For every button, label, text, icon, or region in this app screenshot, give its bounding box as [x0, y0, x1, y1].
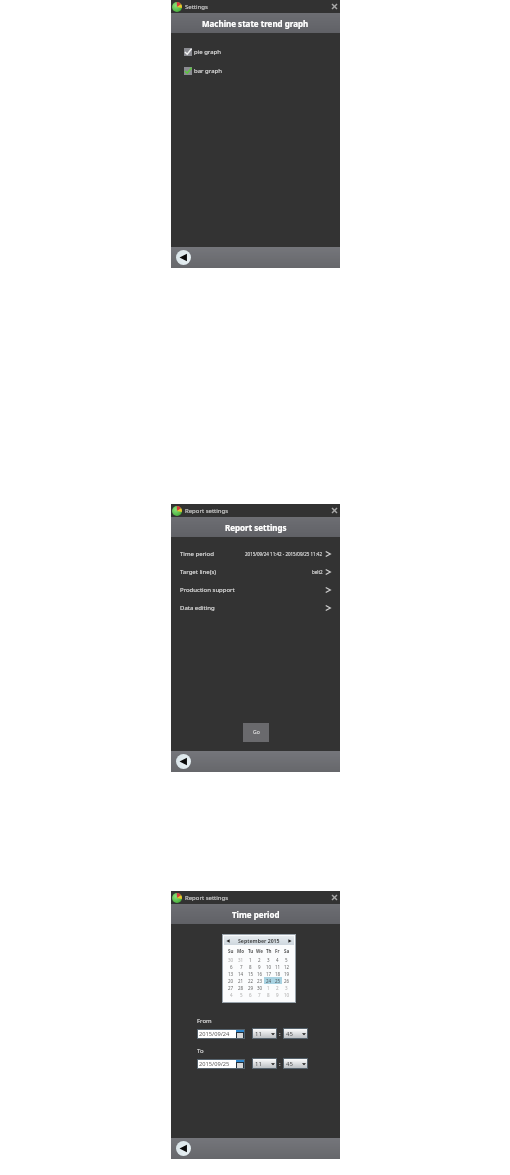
button[interactable]: 9: [255, 963, 264, 970]
button[interactable]: Production support: [171, 581, 340, 599]
staticText: 11: [255, 1060, 262, 1068]
staticText: Settings: [185, 3, 208, 11]
staticText: 45: [286, 1030, 293, 1038]
button[interactable]: 21: [236, 977, 246, 984]
button[interactable]: Target line(s): [171, 563, 340, 581]
button[interactable]: Data editing: [171, 599, 340, 617]
staticText: 5: [240, 992, 243, 998]
button[interactable]: 7: [255, 991, 264, 998]
button[interactable]: 28: [236, 984, 246, 991]
staticText: 15: [248, 971, 254, 977]
staticText: Th: [266, 948, 272, 954]
staticText: Time period: [232, 909, 280, 920]
button[interactable]: Close: [329, 892, 340, 903]
staticText: 19: [284, 971, 290, 977]
button[interactable]: 9: [273, 991, 282, 998]
button[interactable]: Back: [176, 250, 191, 265]
button[interactable]: 30: [226, 956, 236, 963]
button[interactable]: 45: [284, 1059, 307, 1068]
button[interactable]: 18: [273, 970, 282, 977]
button[interactable]: 3: [282, 984, 291, 991]
staticText: 10: [266, 964, 272, 970]
button[interactable]: 11: [253, 1029, 276, 1038]
button[interactable]: 3: [264, 956, 273, 963]
staticText: 18: [275, 971, 281, 977]
button[interactable]: pie graph: [184, 48, 221, 56]
staticText: belt2: [312, 569, 323, 575]
staticText: 14: [238, 971, 244, 977]
button[interactable]: 6: [226, 963, 236, 970]
button[interactable]: 1: [246, 956, 255, 963]
button[interactable]: 22: [246, 977, 255, 984]
button[interactable]: 16: [255, 970, 264, 977]
staticText: 3: [285, 985, 288, 991]
staticText: 23: [257, 978, 263, 984]
button[interactable]: Time period: [171, 545, 340, 563]
staticText: pie graph: [194, 48, 221, 56]
button[interactable]: Next month: [288, 939, 292, 943]
button[interactable]: Previous month: [226, 939, 230, 943]
button[interactable]: 25: [273, 977, 282, 984]
button[interactable]: Close: [329, 1, 340, 12]
staticText: 7: [258, 992, 261, 998]
button[interactable]: 2015/09/24: [198, 1030, 244, 1038]
staticText: Target line(s): [180, 568, 217, 576]
button[interactable]: Back: [176, 754, 191, 769]
button[interactable]: 15: [246, 970, 255, 977]
button[interactable]: 6: [246, 991, 255, 998]
button[interactable]: Back: [176, 1141, 191, 1156]
staticText: 9: [258, 964, 261, 970]
button[interactable]: 30: [255, 984, 264, 991]
button[interactable]: 27: [226, 984, 236, 991]
staticText: 3: [267, 957, 270, 963]
button[interactable]: 4: [226, 991, 236, 998]
button[interactable]: 13: [226, 970, 236, 977]
button[interactable]: 26: [282, 977, 291, 984]
button[interactable]: 11: [273, 963, 282, 970]
staticText: 2015/09/25: [199, 1060, 230, 1068]
staticText: 30: [228, 957, 234, 963]
button[interactable]: 20: [226, 977, 236, 984]
button[interactable]: 2015/09/25: [198, 1060, 244, 1068]
button[interactable]: 1: [264, 984, 273, 991]
staticText: Fr: [275, 948, 280, 954]
staticText: 2015/09/24: [199, 1030, 230, 1038]
button[interactable]: 45: [284, 1029, 307, 1038]
button[interactable]: 5: [236, 991, 246, 998]
button[interactable]: 2: [255, 956, 264, 963]
staticText: 8: [267, 992, 270, 998]
button[interactable]: Go: [243, 723, 269, 742]
button[interactable]: 2: [273, 984, 282, 991]
button[interactable]: 17: [264, 970, 273, 977]
button[interactable]: 14: [236, 970, 246, 977]
button[interactable]: 29: [246, 984, 255, 991]
button[interactable]: 7: [236, 963, 246, 970]
button[interactable]: 31: [236, 956, 246, 963]
button[interactable]: 10: [264, 963, 273, 970]
staticText: 1: [267, 985, 270, 991]
button[interactable]: 19: [282, 970, 291, 977]
staticText: 20: [228, 978, 234, 984]
button[interactable]: Close: [329, 505, 340, 516]
button[interactable]: 4: [273, 956, 282, 963]
button[interactable]: 5: [282, 956, 291, 963]
staticText: 4: [276, 957, 279, 963]
button[interactable]: 11: [253, 1059, 276, 1068]
staticText: 10: [284, 992, 290, 998]
button[interactable]: 8: [246, 963, 255, 970]
staticText: Su: [228, 948, 234, 954]
button[interactable]: 23: [255, 977, 264, 984]
staticText: 5: [285, 957, 288, 963]
staticText: 4: [230, 992, 233, 998]
staticText: 25: [275, 978, 281, 984]
button[interactable]: 24: [264, 977, 273, 984]
button[interactable]: bar graph: [184, 67, 222, 75]
staticText: 2015/09/24 11:42 - 2015/09/25 11:42: [245, 551, 323, 557]
staticText: 6: [249, 992, 252, 998]
staticText: 8: [249, 964, 252, 970]
button[interactable]: 12: [282, 963, 291, 970]
button[interactable]: 8: [264, 991, 273, 998]
staticText: 17: [266, 971, 272, 977]
button[interactable]: 10: [282, 991, 291, 998]
staticText: Report settings: [225, 522, 287, 533]
